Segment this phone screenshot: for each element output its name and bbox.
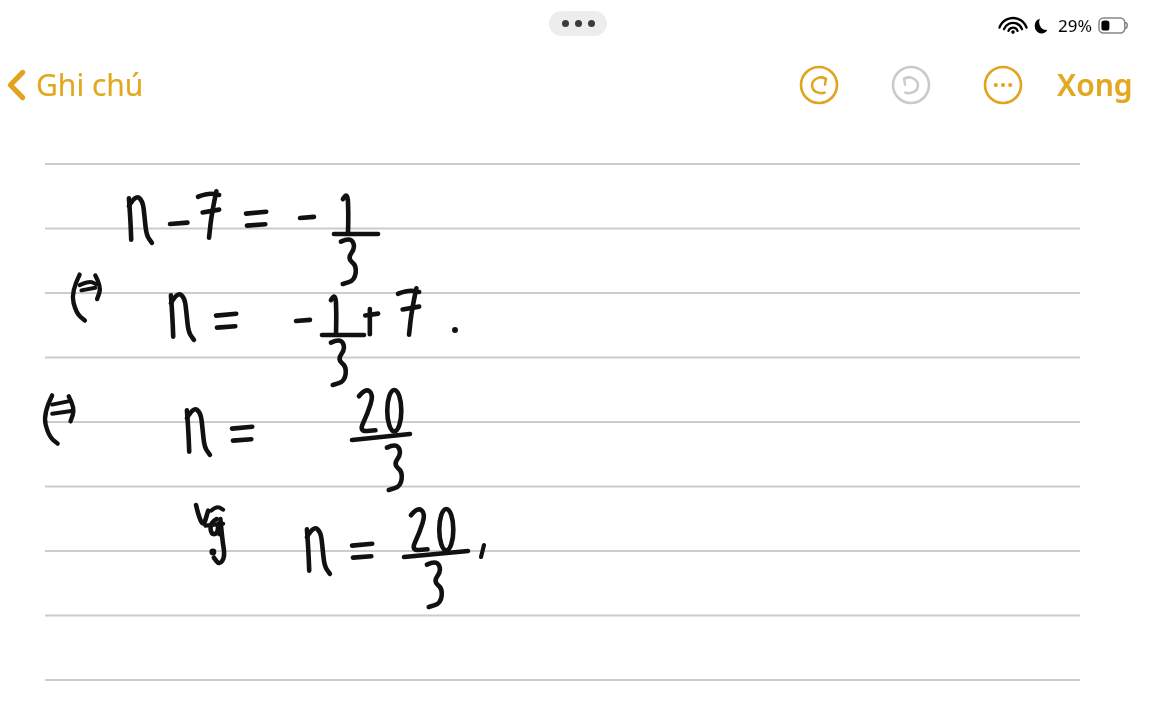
button[interactable]: More options [977, 59, 1029, 111]
button[interactable]: Undo [793, 59, 845, 111]
button[interactable]: Ghi chú [2, 58, 148, 111]
button[interactable]: Xong [1051, 56, 1139, 113]
button[interactable]: Multitasking controls [549, 11, 607, 36]
staticText: Ghi chú [36, 64, 144, 105]
staticText: 29% [1058, 14, 1092, 37]
staticText: Xong [1057, 64, 1133, 105]
button[interactable] [0, 0, 1155, 707]
button[interactable]: Redo [885, 59, 937, 111]
